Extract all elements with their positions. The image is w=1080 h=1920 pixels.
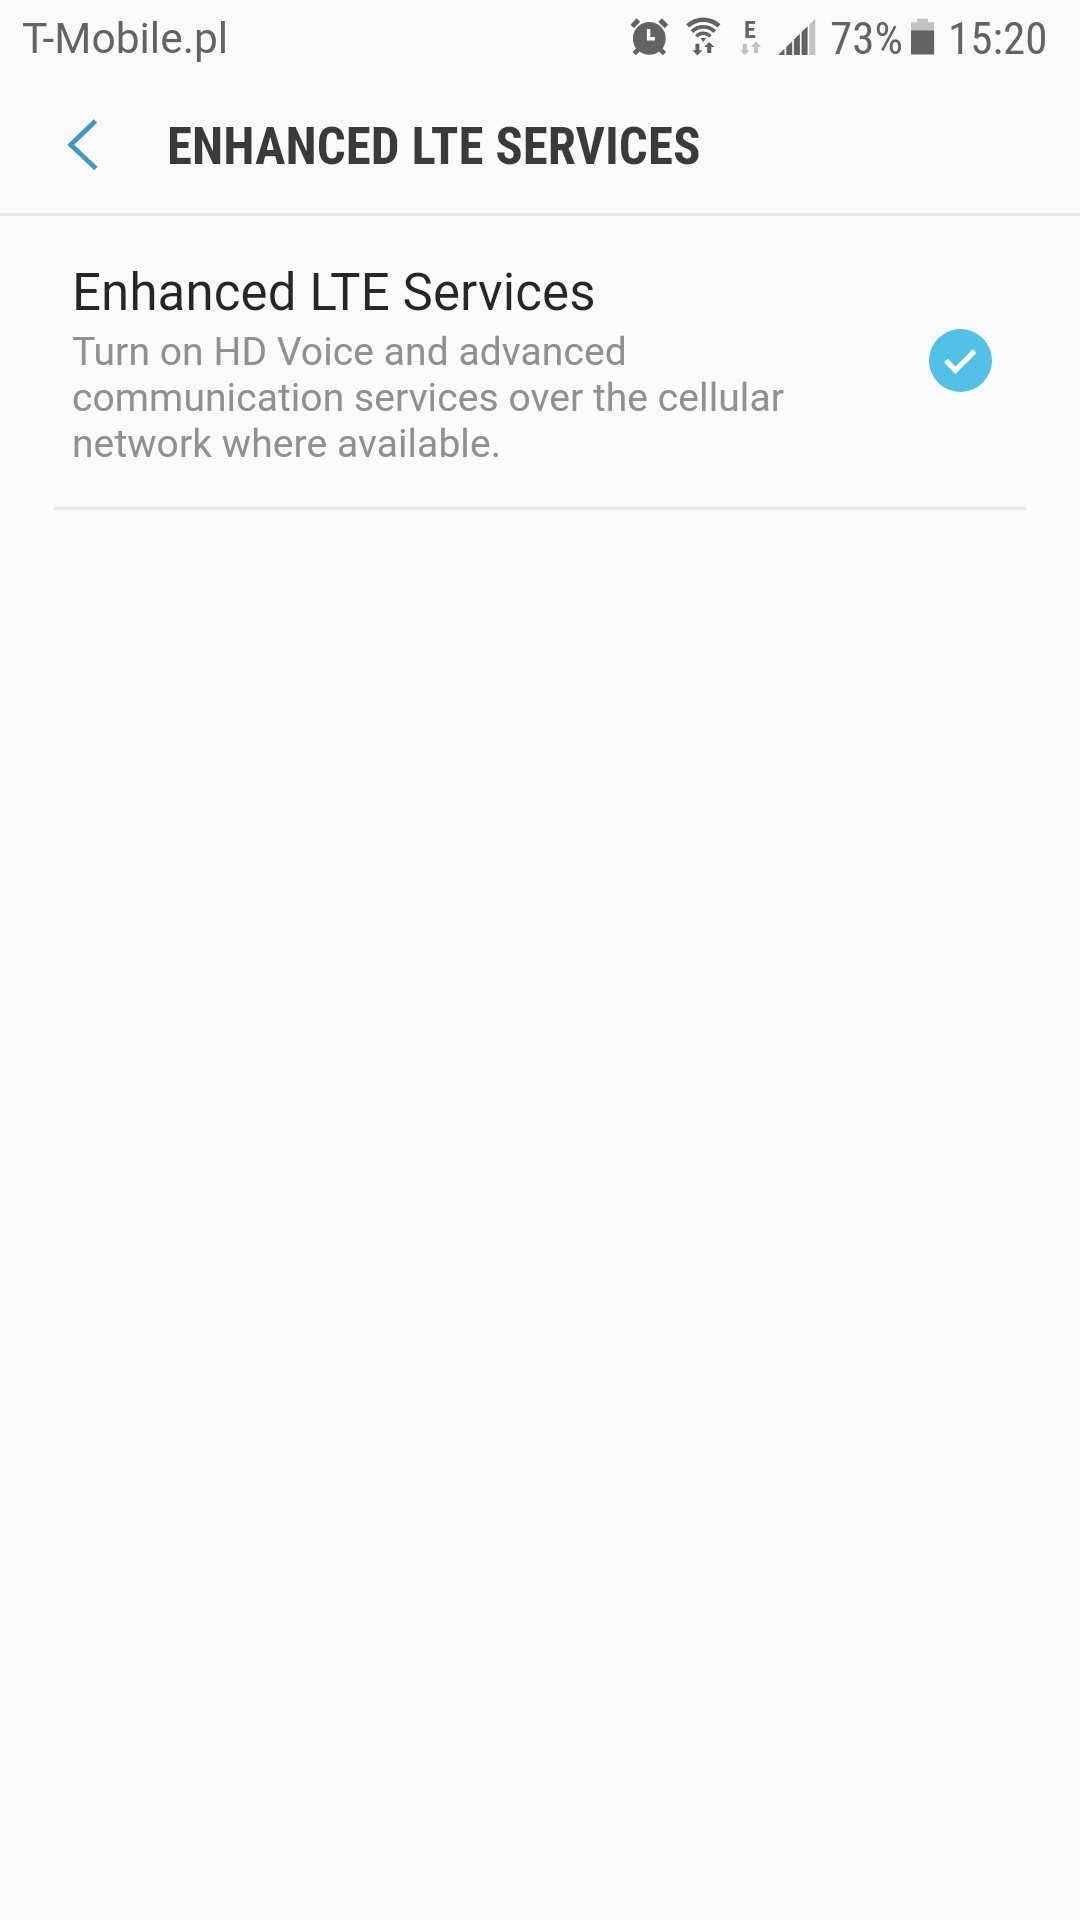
staticText: T-Mobile.pl [22,14,229,64]
staticText: E [744,16,756,44]
staticText: Enhanced LTE Services [72,263,596,323]
button[interactable]: Enhanced LTE Services, on [929,329,992,392]
staticText: Turn on HD Voice and advanced communicat… [72,329,802,467]
staticText: 73% [830,12,903,65]
button[interactable]: Navigate up [26,93,134,201]
button[interactable]: Enhanced LTE Services [0,215,1080,509]
staticText: ENHANCED LTE SERVICES [167,117,701,177]
staticText: 15:20 [948,12,1048,65]
